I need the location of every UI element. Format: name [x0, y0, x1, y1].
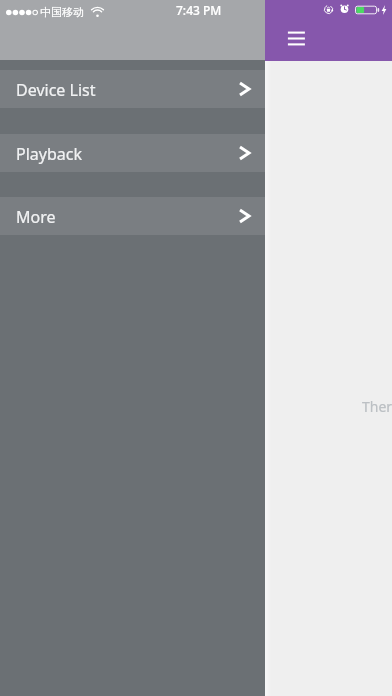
button[interactable]: Device List	[0, 70, 265, 108]
button[interactable]: More	[0, 197, 265, 235]
staticText: Playback	[16, 143, 82, 165]
staticText: 中国移动	[40, 5, 84, 19]
staticText: More	[16, 206, 56, 228]
staticText: 7:43 PM	[176, 2, 222, 18]
button[interactable]: Playback	[0, 134, 265, 172]
staticText: Device List	[16, 79, 96, 101]
button[interactable]: Open navigation drawer	[278, 20, 315, 53]
staticText: There is no device data	[362, 397, 392, 416]
